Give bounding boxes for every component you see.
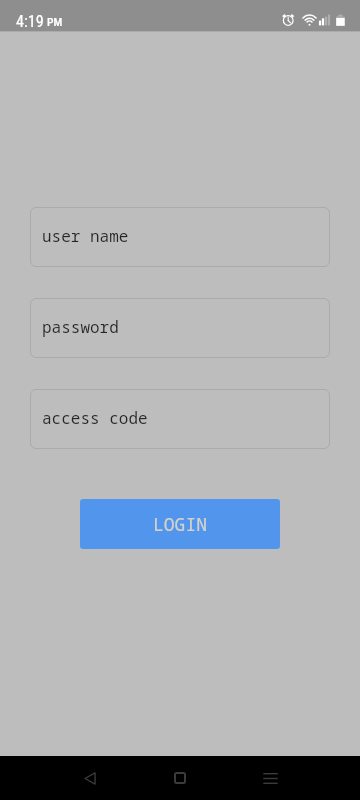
button[interactable]: Menu: [242, 756, 298, 800]
button[interactable]: password: [30, 298, 330, 358]
staticText: 4:19: [16, 12, 44, 31]
button[interactable]: access code: [30, 389, 330, 449]
staticText: PM: [47, 15, 63, 29]
button[interactable]: Home: [152, 756, 208, 800]
button[interactable]: Back: [62, 756, 118, 800]
button[interactable]: LOGIN: [80, 499, 280, 549]
staticText: LOGIN: [153, 512, 207, 537]
staticText: user name: [42, 225, 129, 247]
staticText: access code: [42, 407, 148, 429]
staticText: password: [42, 316, 119, 338]
button[interactable]: user name: [30, 207, 330, 267]
